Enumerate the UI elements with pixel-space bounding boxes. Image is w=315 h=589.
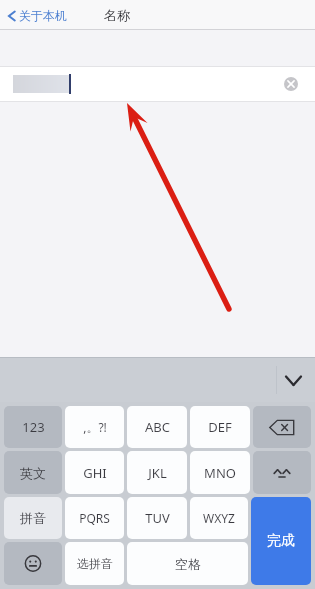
staticText: JKL bbox=[148, 464, 167, 482]
button[interactable]: 符号 bbox=[253, 451, 311, 494]
button[interactable]: PQRS bbox=[65, 497, 124, 539]
staticText: WXYZ bbox=[203, 510, 235, 526]
button[interactable]: DEF bbox=[190, 406, 250, 448]
staticText: 123 bbox=[22, 418, 45, 436]
button[interactable]: ABC bbox=[127, 406, 187, 448]
staticText: 空格 bbox=[175, 556, 201, 572]
button[interactable]: WXYZ bbox=[190, 497, 248, 539]
button[interactable]: JKL bbox=[127, 451, 187, 494]
button[interactable]: MNO bbox=[190, 451, 250, 494]
staticText: GHI bbox=[83, 464, 107, 482]
button[interactable]: 123 bbox=[4, 406, 62, 448]
staticText: 完成 bbox=[267, 532, 295, 550]
staticText: ,。?! bbox=[83, 419, 107, 435]
staticText: 名称 bbox=[104, 7, 130, 23]
button[interactable]: ,。?! bbox=[65, 406, 124, 448]
staticText: ABC bbox=[145, 418, 170, 436]
button[interactable]: 英文 bbox=[4, 451, 62, 494]
button[interactable]: 空格 bbox=[127, 542, 248, 585]
button[interactable]: 关于本机 bbox=[5, 4, 70, 27]
button[interactable]: 选拼音 bbox=[65, 542, 124, 585]
staticText: MNO bbox=[204, 464, 236, 482]
button[interactable]: 表情 bbox=[4, 542, 62, 585]
staticText: DEF bbox=[208, 418, 232, 436]
staticText: PQRS bbox=[79, 510, 110, 526]
button[interactable]: 退格 bbox=[253, 406, 311, 448]
staticText: 关于本机 bbox=[19, 8, 67, 23]
staticText: TUV bbox=[145, 509, 170, 527]
button[interactable]: 完成 bbox=[251, 497, 311, 585]
button[interactable]: TUV bbox=[127, 497, 187, 539]
button[interactable]: 收起键盘 bbox=[279, 366, 307, 394]
button[interactable]: GHI bbox=[65, 451, 124, 494]
button[interactable]: 拼音 bbox=[4, 497, 62, 539]
staticText: 英文 bbox=[20, 465, 46, 481]
staticText: 拼音 bbox=[20, 510, 46, 526]
staticText: 选拼音 bbox=[77, 556, 113, 571]
button[interactable]: 清除文本 bbox=[280, 73, 302, 95]
